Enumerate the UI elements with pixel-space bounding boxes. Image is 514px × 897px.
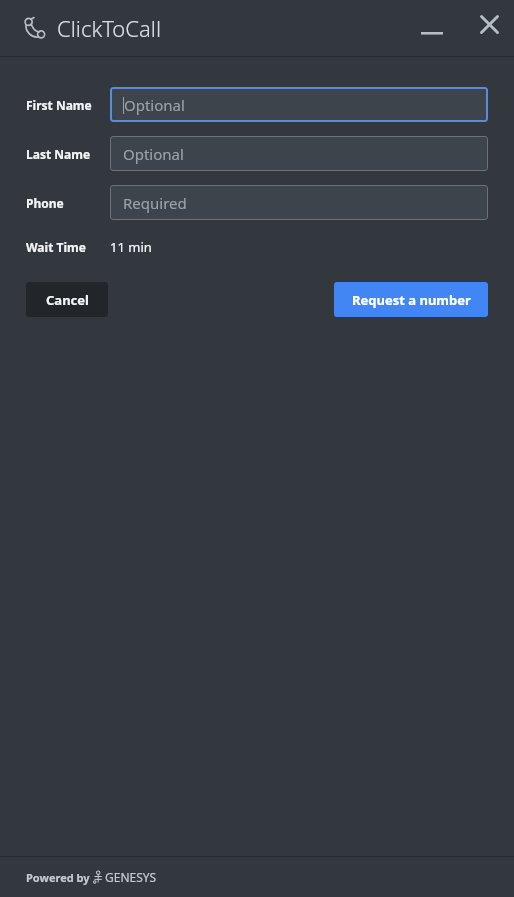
staticText: Wait Time	[26, 239, 86, 255]
staticText: Request a number	[352, 291, 471, 309]
button[interactable]: Minimize	[412, 8, 452, 48]
staticText: Optional	[123, 144, 184, 164]
staticText: 11 min	[110, 238, 152, 256]
button[interactable]: Request a number	[334, 282, 488, 317]
button[interactable]: Required	[110, 185, 488, 220]
staticText: ClickToCall	[57, 13, 162, 43]
button[interactable]: Cancel	[26, 282, 108, 317]
staticText: Phone	[26, 195, 64, 211]
button[interactable]: Optional	[110, 136, 488, 171]
staticText: Powered by	[26, 870, 93, 885]
staticText: Optional	[124, 95, 185, 115]
button[interactable]: Close	[469, 4, 509, 44]
button[interactable]: Optional	[110, 87, 488, 122]
staticText: Last Name	[26, 146, 91, 162]
staticText: GENESYS	[105, 869, 157, 885]
staticText: Required	[123, 193, 187, 213]
staticText: Cancel	[46, 291, 89, 309]
staticText: First Name	[26, 97, 92, 113]
